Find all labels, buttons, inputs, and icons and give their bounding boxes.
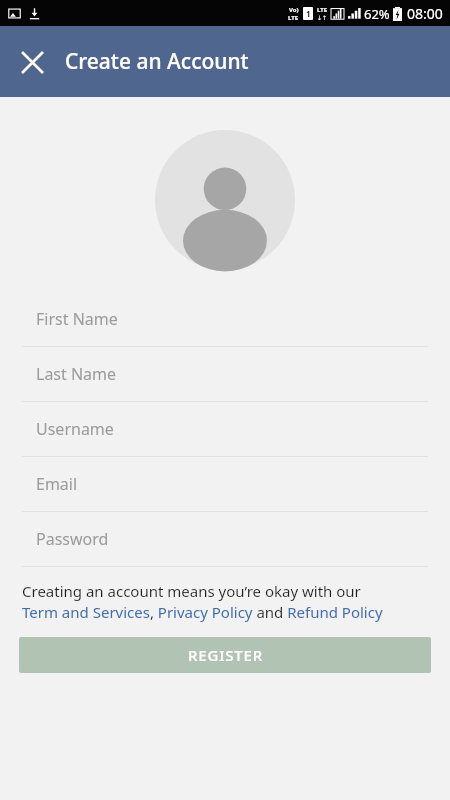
button[interactable]: Email bbox=[0, 457, 450, 512]
staticText: 1 bbox=[306, 8, 311, 19]
staticText: Username bbox=[36, 418, 114, 440]
staticText: LTE bbox=[288, 14, 299, 22]
staticText: Email bbox=[36, 473, 78, 495]
staticText: Vo) bbox=[289, 6, 299, 14]
button[interactable]: Last Name bbox=[0, 347, 450, 402]
staticText: Creating an account means you’re okay wi… bbox=[22, 581, 383, 623]
button[interactable]: REGISTER bbox=[19, 637, 431, 673]
staticText: 62% bbox=[364, 5, 390, 23]
staticText: ↓↑ bbox=[317, 14, 328, 21]
staticText: 08:00 bbox=[407, 4, 443, 23]
staticText: LTE bbox=[317, 6, 328, 14]
button[interactable]: Password bbox=[0, 512, 450, 567]
staticText: Password bbox=[36, 528, 109, 550]
staticText: REGISTER bbox=[188, 645, 263, 665]
button[interactable]: Creating an account means you’re okay wi… bbox=[22, 581, 434, 623]
staticText: Last Name bbox=[36, 363, 117, 385]
staticText: Create an Account bbox=[65, 47, 249, 76]
button[interactable]: First Name bbox=[0, 292, 450, 347]
button[interactable]: Username bbox=[0, 402, 450, 457]
button[interactable]: Close bbox=[8, 38, 56, 86]
staticText: First Name bbox=[36, 308, 118, 330]
